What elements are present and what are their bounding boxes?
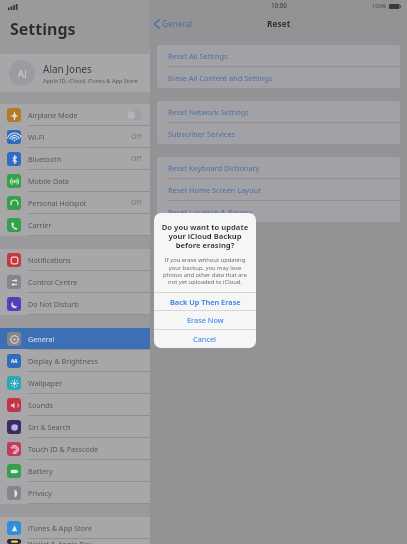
staticText: Control Centre bbox=[28, 277, 142, 287]
staticText: Settings bbox=[10, 18, 76, 40]
staticText: Erase Now bbox=[187, 315, 224, 325]
staticText: Sounds bbox=[28, 400, 142, 410]
staticText: Off bbox=[131, 132, 142, 142]
staticText: Wallet & Apple Pay bbox=[28, 539, 142, 544]
staticText: Reset Location & Privacy bbox=[168, 207, 253, 217]
staticText: Touch ID & Passcode bbox=[28, 444, 142, 454]
button[interactable]: Erase Now bbox=[154, 311, 256, 329]
staticText: If you erase without updating your backu… bbox=[160, 256, 250, 285]
staticText: Wallpaper bbox=[28, 378, 142, 388]
staticText: Back Up Then Erase bbox=[170, 297, 241, 307]
staticText: Wi-Fi bbox=[28, 132, 131, 142]
staticText: Battery bbox=[28, 466, 142, 476]
button[interactable]: Mobile Data bbox=[0, 170, 150, 191]
button[interactable]: General bbox=[0, 328, 150, 349]
staticText: Off bbox=[131, 154, 142, 164]
button[interactable]: Reset Location & Privacy bbox=[157, 201, 400, 222]
button[interactable]: Reset Network Settings bbox=[157, 101, 400, 122]
staticText: Privacy bbox=[28, 488, 142, 498]
staticText: Apple ID, iCloud, iTunes & App Store bbox=[43, 77, 138, 85]
button[interactable]: Sounds bbox=[0, 394, 150, 415]
button[interactable]: Wi-Fi bbox=[0, 126, 150, 147]
button[interactable]: Airplane Mode bbox=[0, 104, 150, 125]
staticText: iTunes & App Store bbox=[28, 523, 142, 533]
button[interactable]: Reset All Settings bbox=[157, 45, 400, 66]
staticText: General bbox=[28, 334, 142, 344]
button[interactable]: Reset Home Screen Layout bbox=[157, 179, 400, 200]
staticText: Reset bbox=[267, 18, 291, 29]
button[interactable]: Do Not Disturb bbox=[0, 293, 150, 314]
staticText: Siri & Search bbox=[28, 422, 142, 432]
button[interactable]: Back to General bbox=[150, 18, 199, 29]
staticText: Bluetooth bbox=[28, 154, 131, 164]
button[interactable]: iTunes & App Store bbox=[0, 517, 150, 538]
button[interactable]: Control Centre bbox=[0, 271, 150, 292]
button[interactable]: Erase All Content and Settings bbox=[157, 67, 400, 88]
staticText: Do Not Disturb bbox=[28, 299, 142, 309]
staticText: Airplane Mode bbox=[28, 110, 126, 120]
staticText: AA bbox=[11, 358, 18, 364]
button[interactable]: Carrier bbox=[0, 214, 150, 235]
button[interactable]: Touch ID & Passcode bbox=[0, 438, 150, 459]
button[interactable]: Siri & Search bbox=[0, 416, 150, 437]
staticText: Reset Keyboard Dictionary bbox=[168, 163, 260, 173]
staticText: Erase All Content and Settings bbox=[168, 73, 273, 83]
staticText: Reset Home Screen Layout bbox=[168, 185, 261, 195]
staticText: Cancel bbox=[193, 334, 217, 344]
button[interactable]: Wallet & Apple Pay bbox=[0, 539, 150, 544]
button[interactable]: Privacy bbox=[0, 482, 150, 503]
button[interactable]: Bluetooth bbox=[0, 148, 150, 169]
button[interactable]: AA bbox=[0, 350, 150, 371]
button[interactable]: Personal Hotspot bbox=[0, 192, 150, 213]
button[interactable]: Subscriber Services bbox=[157, 123, 400, 144]
button[interactable]: Notifications bbox=[0, 249, 150, 270]
button[interactable]: Battery bbox=[0, 460, 150, 481]
staticText: Alan Jones bbox=[43, 62, 92, 76]
staticText: Reset Network Settings bbox=[168, 107, 249, 117]
staticText: General bbox=[162, 18, 193, 29]
staticText: Mobile Data bbox=[28, 176, 142, 186]
button[interactable]: Wallpaper bbox=[0, 372, 150, 393]
staticText: 100% bbox=[372, 2, 387, 10]
button[interactable]: Cancel bbox=[154, 330, 256, 348]
staticText: 10:00 bbox=[271, 1, 287, 9]
staticText: Off bbox=[131, 198, 142, 208]
staticText: Notifications bbox=[28, 255, 142, 265]
staticText: Subscriber Services bbox=[168, 129, 236, 139]
button[interactable]: AJ bbox=[0, 54, 150, 92]
staticText: Do you want to update your iCloud Backup… bbox=[161, 222, 249, 251]
button[interactable]: Reset Keyboard Dictionary bbox=[157, 157, 400, 178]
staticText: AJ bbox=[18, 67, 27, 79]
staticText: Carrier bbox=[28, 220, 142, 230]
staticText: Reset All Settings bbox=[168, 51, 228, 61]
button[interactable]: Back Up Then Erase bbox=[154, 293, 256, 310]
staticText: Personal Hotspot bbox=[28, 198, 131, 208]
staticText: Display & Brightness bbox=[28, 356, 142, 366]
